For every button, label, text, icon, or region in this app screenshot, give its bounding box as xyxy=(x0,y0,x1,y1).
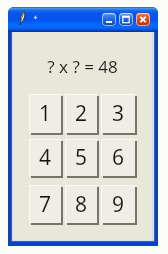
button[interactable]: 5 xyxy=(65,139,97,176)
button[interactable]: Maximize xyxy=(119,13,133,26)
staticText: 7 xyxy=(39,190,52,219)
button[interactable]: 4 xyxy=(29,139,61,176)
staticText: 5 xyxy=(75,143,88,172)
staticText: 6 xyxy=(112,143,125,172)
button[interactable]: 7 xyxy=(29,185,61,223)
staticText: 3 xyxy=(112,99,125,128)
button[interactable]: 2 xyxy=(65,94,97,133)
staticText: ? x ? = 48 xyxy=(47,55,118,78)
other: Application icon xyxy=(18,11,25,25)
button[interactable]: 9 xyxy=(101,185,135,223)
staticText: 1 xyxy=(39,99,52,128)
button[interactable]: 8 xyxy=(65,185,97,223)
button[interactable]: 1 xyxy=(29,94,61,133)
staticText: 2 xyxy=(75,99,88,128)
staticText: 9 xyxy=(112,190,125,219)
button[interactable]: 6 xyxy=(101,139,135,176)
button[interactable]: 3 xyxy=(101,94,135,133)
staticText: 4 xyxy=(39,143,52,172)
button[interactable]: Close xyxy=(136,13,150,26)
staticText: 8 xyxy=(75,190,88,219)
button[interactable]: Minimize xyxy=(102,13,116,26)
